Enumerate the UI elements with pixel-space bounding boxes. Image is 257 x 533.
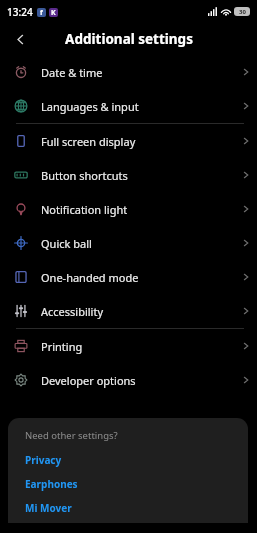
staticText: Printing xyxy=(41,339,235,354)
staticText: Earphones xyxy=(25,477,78,491)
staticText: Date & time xyxy=(41,65,235,80)
button[interactable]: Back xyxy=(4,23,36,55)
staticText: Quick ball xyxy=(41,236,235,251)
staticText: 30 xyxy=(239,8,246,16)
staticText: Full screen display xyxy=(41,134,235,149)
button[interactable]: Accessibility xyxy=(0,294,257,328)
staticText: f xyxy=(40,8,43,17)
staticText: K xyxy=(51,8,56,17)
button[interactable]: One-handed mode xyxy=(0,260,257,294)
staticText: Accessibility xyxy=(41,304,235,319)
button[interactable]: Languages & input xyxy=(0,89,257,123)
button[interactable]: Quick ball xyxy=(0,226,257,260)
staticText: Mi Mover xyxy=(25,501,72,515)
staticText: Privacy xyxy=(25,453,62,467)
button[interactable]: Privacy xyxy=(25,453,62,467)
button[interactable]: Button shortcuts xyxy=(0,158,257,192)
button[interactable]: Earphones xyxy=(25,477,78,491)
button[interactable]: Mi Mover xyxy=(25,501,72,515)
staticText: Need other settings? xyxy=(25,429,118,442)
staticText: Notification light xyxy=(41,202,235,217)
staticText: One-handed mode xyxy=(41,270,235,285)
staticText: Languages & input xyxy=(41,99,235,114)
button[interactable]: Full screen display xyxy=(0,124,257,158)
button[interactable]: Date & time xyxy=(0,55,257,89)
button[interactable]: Notification light xyxy=(0,192,257,226)
staticText: 13:24 xyxy=(7,5,33,19)
button[interactable]: Printing xyxy=(0,329,257,363)
staticText: Additional settings xyxy=(65,30,193,48)
button[interactable]: Developer options xyxy=(0,363,257,397)
staticText: Developer options xyxy=(41,373,235,388)
staticText: Button shortcuts xyxy=(41,168,235,183)
